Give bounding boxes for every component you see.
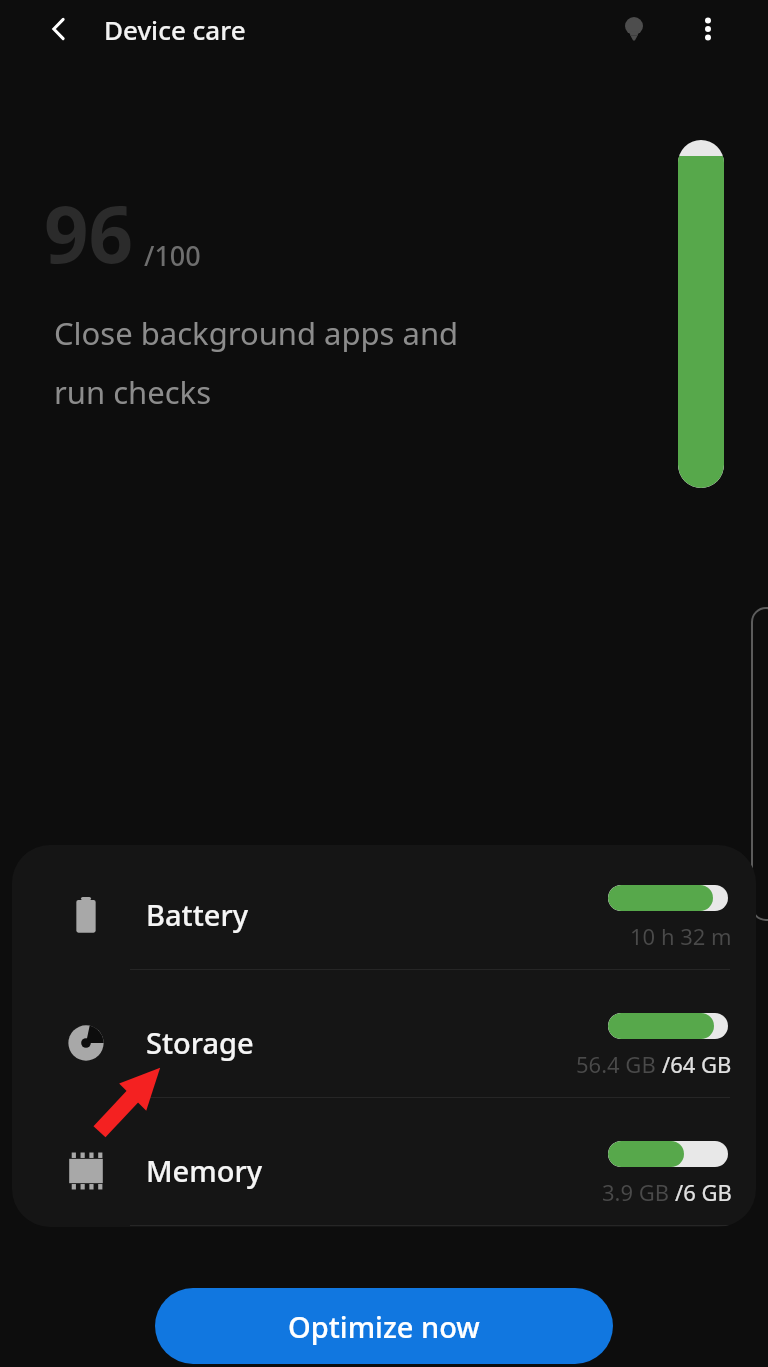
button[interactable]: Memory: [12, 1119, 756, 1225]
staticText: 10 h 32 m: [630, 921, 732, 951]
staticText: Storage: [146, 1023, 254, 1062]
button[interactable]: More options: [682, 3, 734, 55]
staticText: Battery: [146, 895, 248, 934]
staticText: Memory: [146, 1151, 263, 1190]
button[interactable]: Battery: [12, 863, 756, 969]
button[interactable]: Storage: [12, 991, 756, 1097]
staticText: /64 GB: [662, 1049, 732, 1079]
staticText: Device care: [104, 12, 246, 47]
button[interactable]: Tips: [608, 3, 660, 55]
staticText: /100: [144, 237, 201, 274]
staticText: 56.4 GB: [576, 1049, 662, 1079]
staticText: 3.9 GB: [602, 1177, 675, 1207]
button[interactable]: Optimize now: [155, 1288, 613, 1364]
button[interactable]: Back: [34, 4, 84, 54]
staticText: 96: [44, 180, 134, 286]
staticText: Optimize now: [288, 1307, 480, 1346]
staticText: Close background apps and run checks: [54, 312, 459, 413]
staticText: /6 GB: [675, 1177, 732, 1207]
